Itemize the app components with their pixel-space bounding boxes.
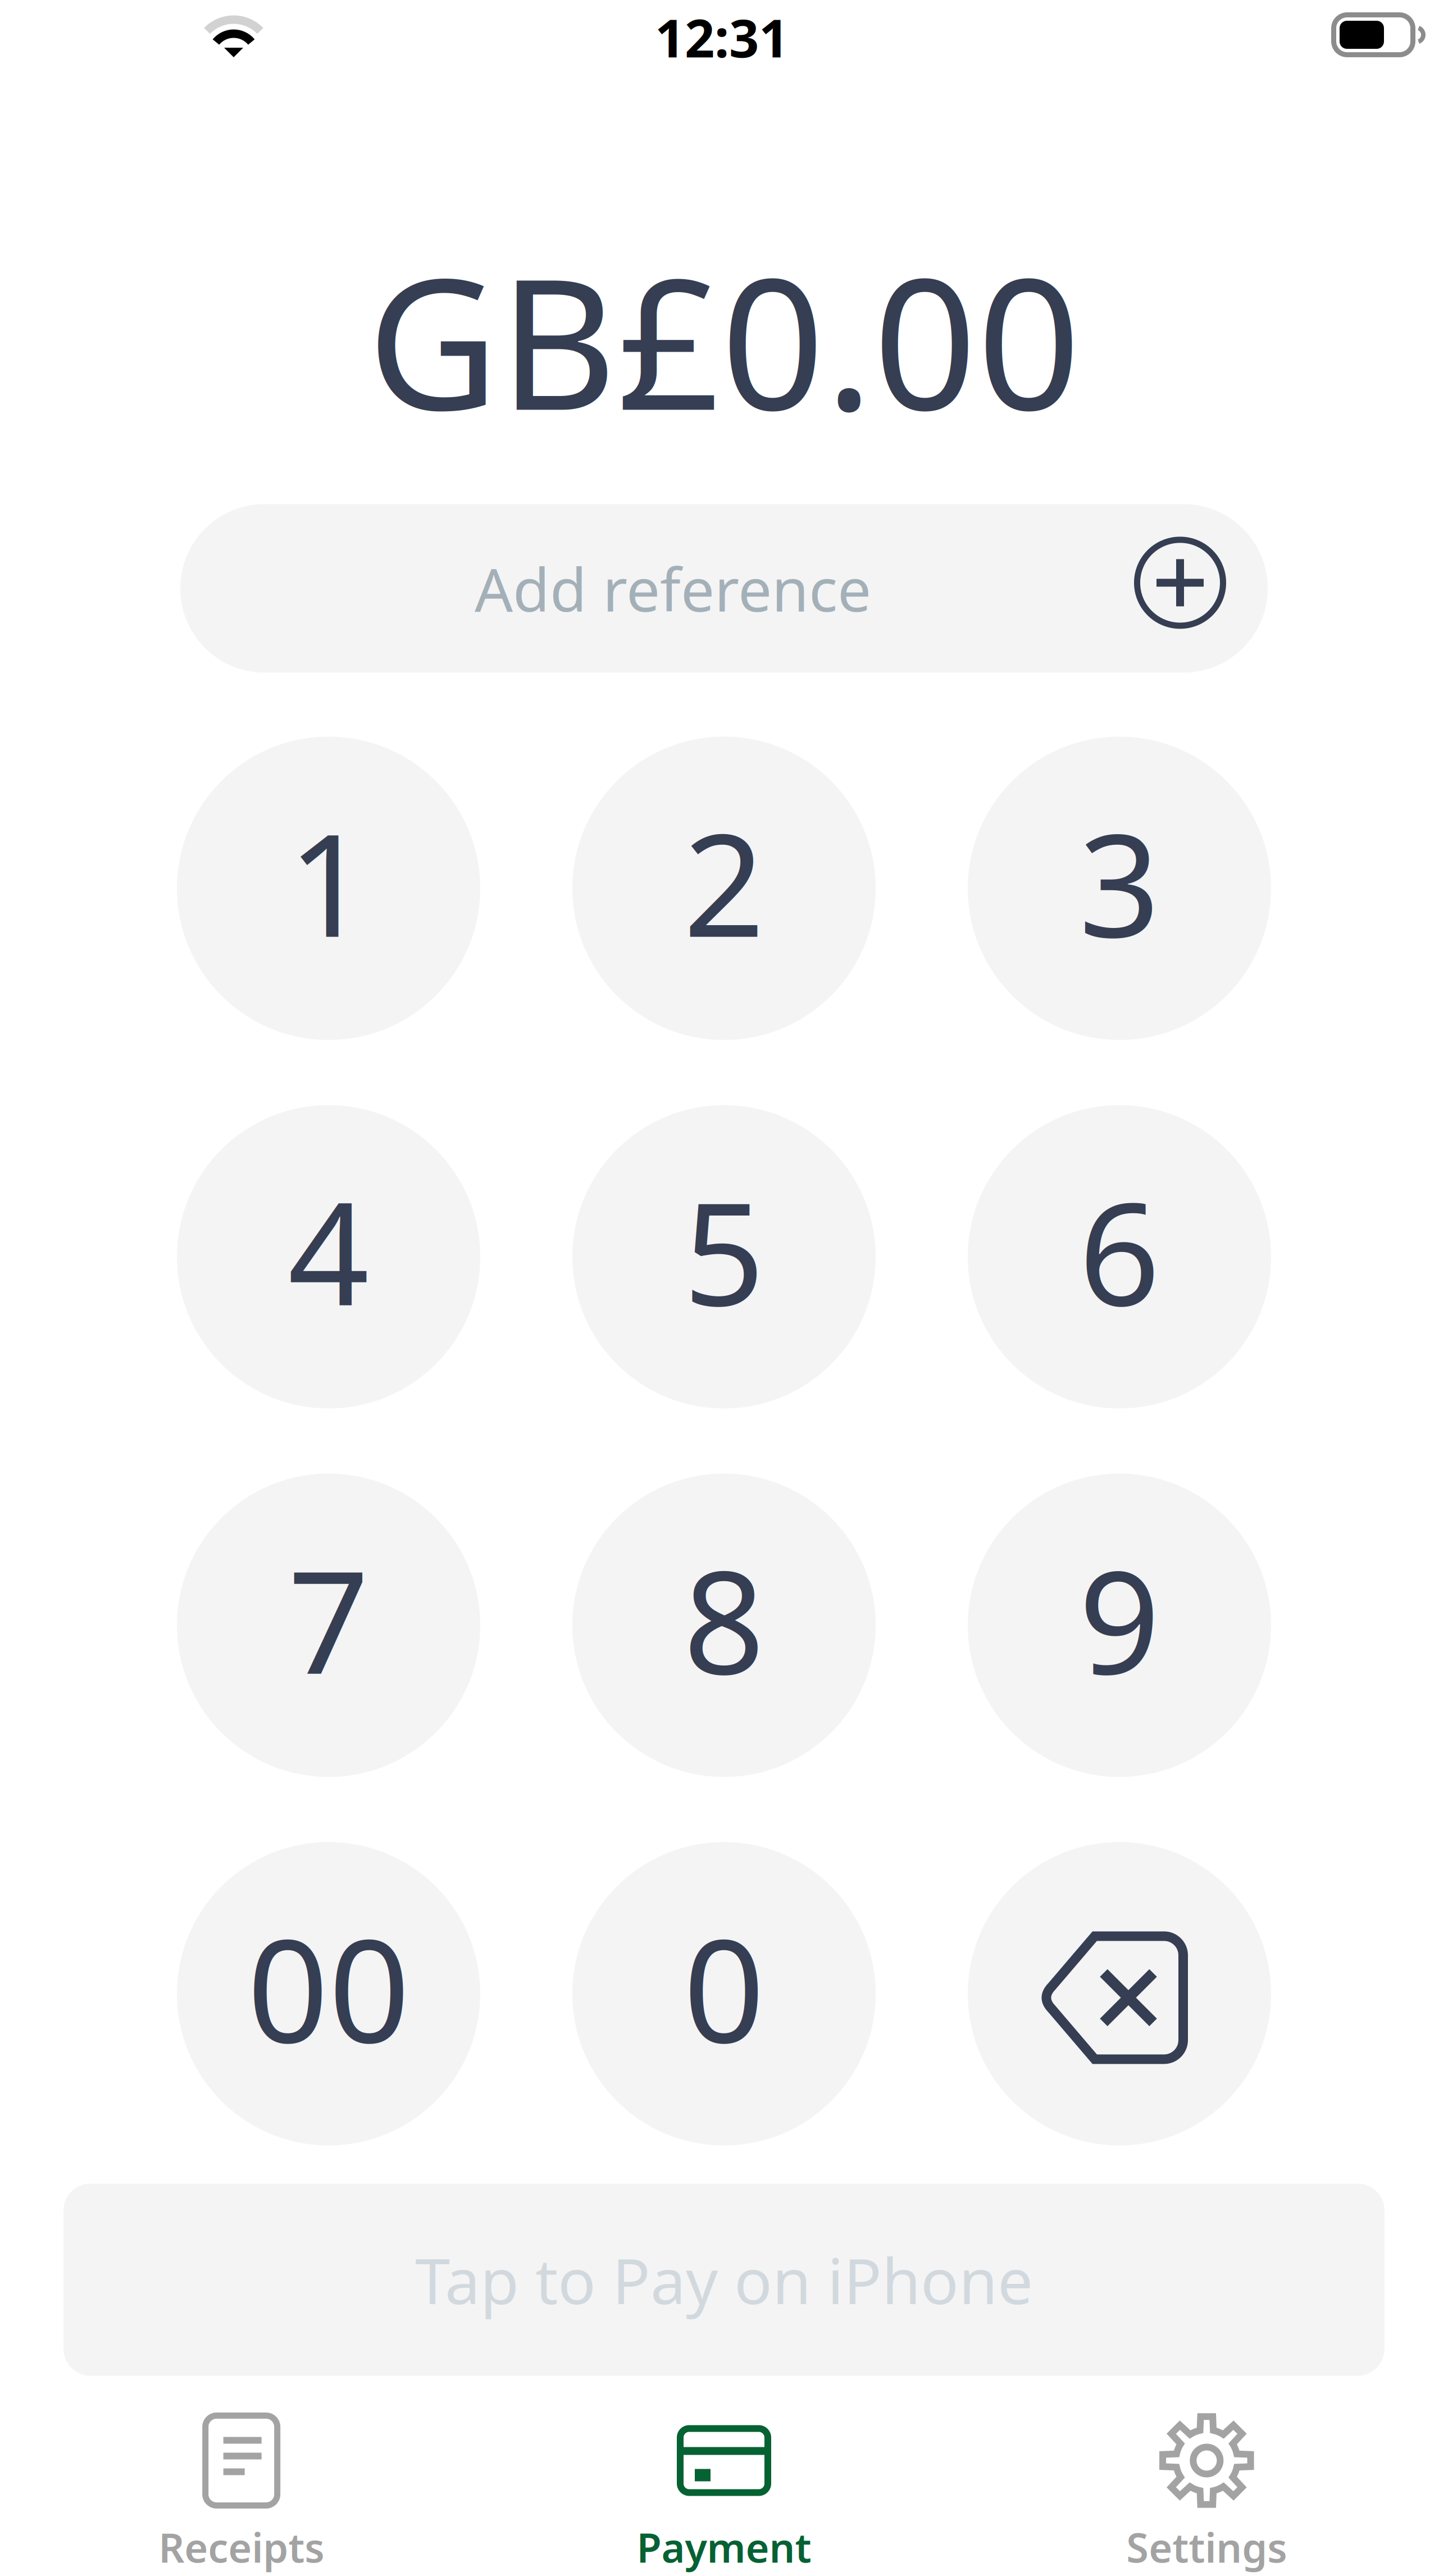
button[interactable]: [968, 1474, 1271, 1777]
staticText: 0: [683, 1893, 765, 2081]
button[interactable]: [968, 1105, 1271, 1408]
staticText: 1: [288, 787, 369, 976]
staticText: 9: [1079, 1524, 1160, 1713]
button[interactable]: [572, 1105, 876, 1408]
button[interactable]: [572, 1842, 876, 2145]
staticText: Payment: [637, 2520, 811, 2574]
button[interactable]: Tap to Pay on iPhone: [63, 2184, 1385, 2376]
button[interactable]: [177, 1474, 480, 1777]
staticText: Tap to Pay on iPhone: [415, 2238, 1033, 2321]
button[interactable]: [572, 737, 876, 1040]
staticText: 6: [1079, 1156, 1160, 1345]
staticText: 4: [288, 1156, 369, 1345]
button[interactable]: Payment: [483, 2380, 965, 2576]
staticText: Receipts: [159, 2520, 324, 2574]
staticText: 12:31: [655, 2, 789, 72]
button[interactable]: Delete: [968, 1842, 1271, 2145]
button[interactable]: [177, 1105, 480, 1408]
staticText: Settings: [1126, 2520, 1287, 2574]
staticText: 5: [683, 1156, 765, 1345]
button[interactable]: Add reference: [1119, 522, 1241, 643]
button[interactable]: Receipts: [0, 2380, 483, 2576]
button[interactable]: [968, 737, 1271, 1040]
staticText: 8: [683, 1524, 765, 1713]
button[interactable]: [177, 737, 480, 1040]
button[interactable]: [572, 1474, 876, 1777]
staticText: Add reference: [475, 549, 871, 628]
button[interactable]: Add reference: [180, 504, 1268, 673]
staticText: 3: [1079, 787, 1160, 976]
staticText: 00: [247, 1893, 410, 2081]
staticText: GB£0.00: [367, 219, 1081, 460]
button[interactable]: [177, 1842, 480, 2145]
staticText: 7: [288, 1524, 369, 1713]
staticText: 2: [683, 787, 765, 976]
button[interactable]: Settings: [965, 2380, 1448, 2576]
